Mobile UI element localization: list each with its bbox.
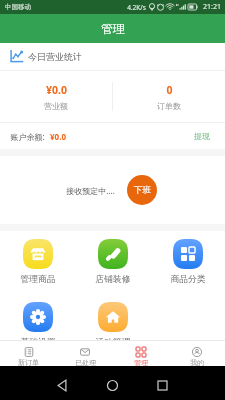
staticText: 中国移动 <box>5 3 31 11</box>
button[interactable]: Home <box>104 377 121 394</box>
button[interactable]: 活动管理 <box>75 294 150 348</box>
button[interactable]: 基础设置 <box>0 294 75 348</box>
staticText: 0 <box>166 83 173 97</box>
button[interactable]: 商品分类 <box>150 231 225 285</box>
button[interactable]: 我的 <box>169 341 225 366</box>
button[interactable]: 新订单 <box>0 341 57 366</box>
staticText: 21:21 <box>203 2 221 12</box>
staticText: 商品分类 <box>170 274 206 285</box>
staticText: 账户余额: <box>10 131 45 142</box>
button[interactable]: Recents <box>154 377 171 394</box>
staticText: 管理商品 <box>20 274 56 285</box>
staticText: 活动管理 <box>95 337 131 348</box>
button[interactable]: 下班 <box>127 175 157 205</box>
staticText: 已处理 <box>75 358 96 366</box>
staticText: ¥0.0 <box>46 83 67 97</box>
staticText: 4.2K/s <box>127 3 146 12</box>
staticText: 接收预定中.... <box>66 185 115 196</box>
staticText: 提现 <box>194 131 210 141</box>
staticText: 订单数 <box>157 101 181 111</box>
staticText: 下班 <box>134 185 151 196</box>
button[interactable]: Back <box>54 377 71 394</box>
staticText: 基础设置 <box>20 337 56 348</box>
button[interactable]: 管理 <box>113 341 169 366</box>
staticText: 新订单 <box>18 358 39 366</box>
button[interactable]: 0 <box>113 71 225 122</box>
button[interactable]: 管理商品 <box>0 231 75 285</box>
button[interactable]: 提现 <box>192 129 212 143</box>
button[interactable]: ¥0.0 <box>0 71 112 122</box>
button[interactable]: 店铺装修 <box>75 231 150 285</box>
staticText: 管理 <box>134 358 148 366</box>
staticText: 今日营业统计 <box>28 51 82 62</box>
staticText: 我的 <box>190 358 204 366</box>
staticText: ¥0.0 <box>50 131 66 142</box>
staticText: 营业额 <box>44 101 68 111</box>
staticText: 管理 <box>101 21 125 36</box>
staticText: 店铺装修 <box>95 274 131 285</box>
button[interactable]: 已处理 <box>57 341 113 366</box>
